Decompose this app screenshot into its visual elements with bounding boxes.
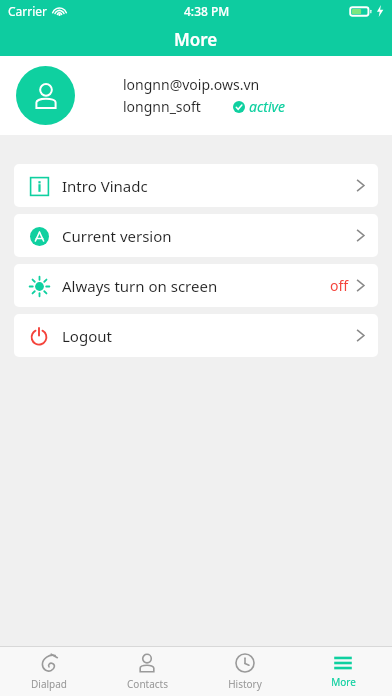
- staticText: Current version: [62, 226, 172, 246]
- button[interactable]: Logout: [14, 314, 378, 357]
- staticText: Logout: [62, 326, 112, 346]
- staticText: More: [331, 675, 356, 689]
- staticText: active: [249, 97, 286, 116]
- staticText: off: [330, 276, 349, 295]
- button[interactable]: History: [196, 647, 294, 696]
- button[interactable]: Contacts: [98, 647, 196, 696]
- button[interactable]: More: [294, 647, 392, 696]
- button[interactable]: Always turn on screen: [14, 264, 378, 307]
- staticText: Carrier: [8, 3, 48, 19]
- staticText: Dialpad: [31, 677, 67, 691]
- button[interactable]: Dialpad: [0, 647, 98, 696]
- staticText: longnn_soft: [123, 97, 201, 116]
- staticText: History: [228, 677, 262, 691]
- staticText: 4:38 PM: [184, 3, 230, 19]
- button[interactable]: Current version: [14, 214, 378, 257]
- staticText: Contacts: [127, 677, 168, 691]
- staticText: More: [174, 28, 218, 51]
- staticText: Always turn on screen: [62, 276, 218, 296]
- staticText: Intro Vinadc: [62, 176, 148, 196]
- button[interactable]: Intro Vinadc: [14, 164, 378, 207]
- staticText: longnn@voip.ows.vn: [123, 75, 260, 94]
